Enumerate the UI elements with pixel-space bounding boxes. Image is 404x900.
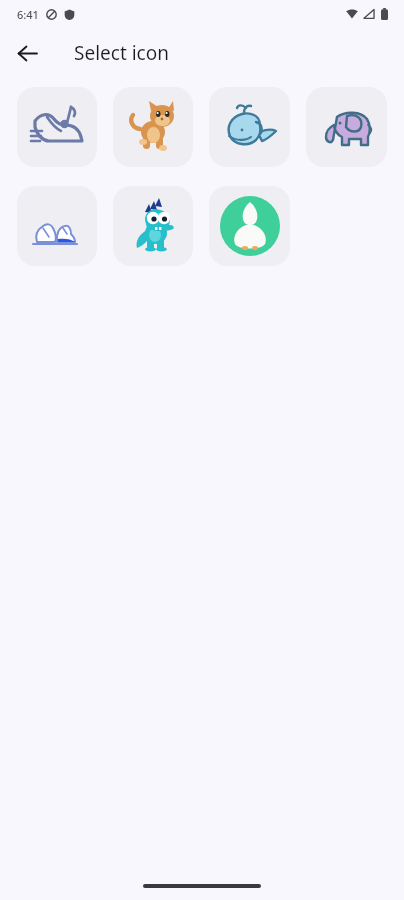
button[interactable]: Sneakers: [17, 186, 97, 266]
button[interactable]: Elephant: [306, 87, 387, 167]
staticText: Select icon: [74, 40, 169, 66]
button[interactable]: Duck: [209, 186, 290, 266]
button[interactable]: Dinosaur: [113, 186, 193, 266]
button[interactable]: Cat: [113, 87, 193, 167]
button[interactable]: Back: [5, 31, 49, 75]
button[interactable]: Whale: [209, 87, 290, 167]
button[interactable]: Running shoe with music: [17, 87, 97, 167]
staticText: 6:41: [17, 7, 39, 22]
